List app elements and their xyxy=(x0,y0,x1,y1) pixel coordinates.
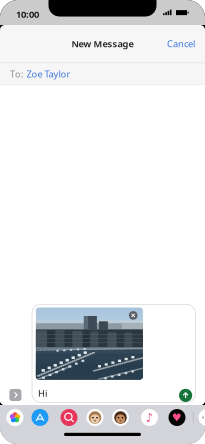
button[interactable]: Images xyxy=(60,409,77,426)
button[interactable]: Show app drawer xyxy=(9,389,21,401)
staticText: ♪ xyxy=(145,411,153,424)
button[interactable]: Digital Touch xyxy=(168,409,185,426)
button[interactable]: Send xyxy=(179,389,192,402)
staticText: ♥ xyxy=(172,411,182,423)
staticText: Zoe Taylor xyxy=(26,68,70,80)
button[interactable]: Photos xyxy=(6,409,23,426)
staticText: 10:00 xyxy=(16,8,39,20)
staticText: Hi xyxy=(38,387,47,399)
staticText: Cancel xyxy=(167,38,195,50)
button[interactable]: To: xyxy=(0,63,205,85)
staticText: To: xyxy=(10,68,24,80)
button[interactable]: Music xyxy=(141,409,158,426)
button[interactable]: Memoji xyxy=(112,409,129,426)
button[interactable]: Cancel xyxy=(160,31,202,57)
button[interactable]: Monkey Memoji xyxy=(86,409,103,426)
button[interactable]: Remove attachment xyxy=(129,311,137,320)
button[interactable]: App Store xyxy=(31,409,48,426)
staticText: New Message xyxy=(71,38,133,50)
